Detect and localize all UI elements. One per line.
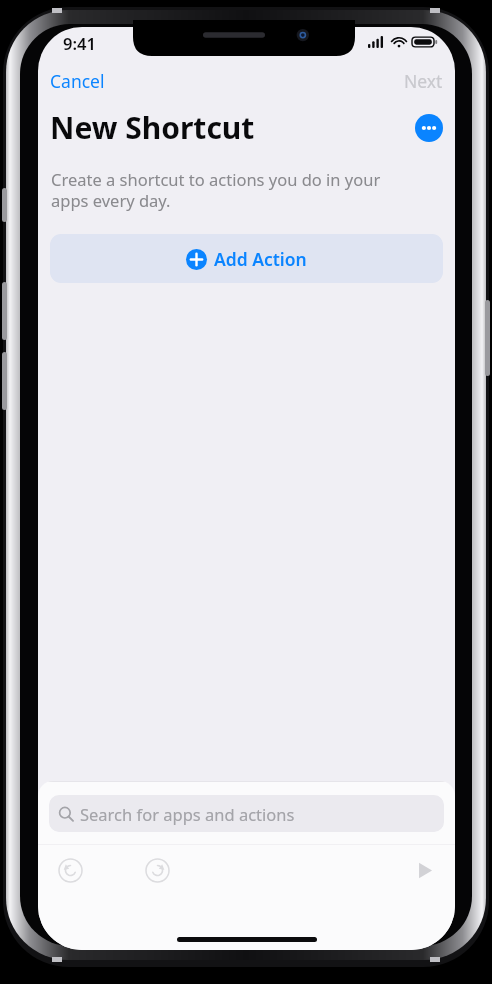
button[interactable]: Redo (135, 848, 179, 892)
staticText: New Shortcut (50, 107, 255, 148)
staticText: Search for apps and actions (80, 803, 295, 825)
button[interactable]: Cancel (44, 65, 111, 97)
staticText: Create a shortcut to actions you do in y… (51, 168, 381, 212)
button[interactable]: Add Action (50, 234, 443, 283)
button[interactable]: Undo (48, 848, 92, 892)
staticText: 9:41 (63, 32, 96, 54)
button[interactable]: Search for apps and actions (49, 795, 444, 832)
button[interactable]: Play shortcut (402, 848, 446, 892)
button[interactable]: Next (398, 65, 449, 97)
staticText: Add Action (214, 247, 307, 271)
button[interactable]: More options (415, 114, 443, 142)
staticText: Cancel (50, 69, 105, 93)
staticText: Next (404, 69, 443, 93)
